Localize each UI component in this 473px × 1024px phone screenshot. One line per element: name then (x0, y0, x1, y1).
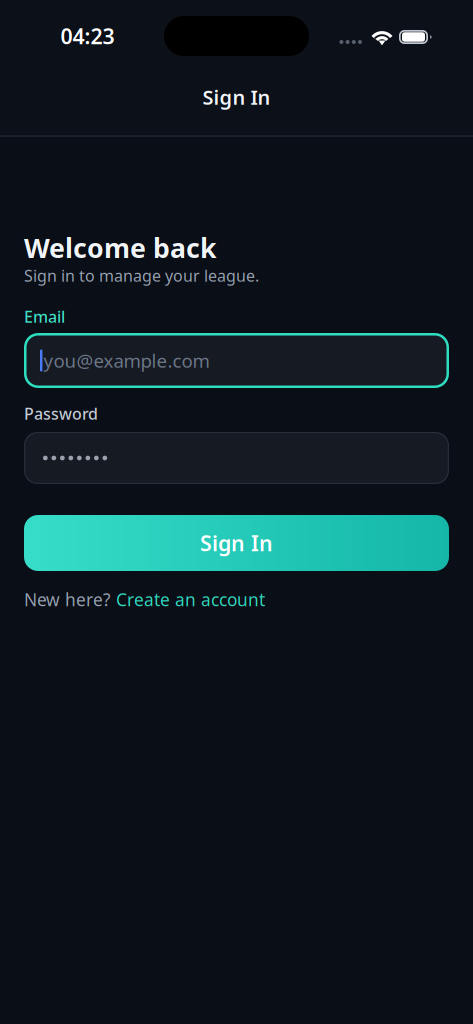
staticText: New here? (24, 588, 116, 611)
button[interactable]: you@example.com (24, 333, 449, 388)
staticText: Sign in to manage your league. (24, 265, 259, 286)
button[interactable]: Password (24, 432, 449, 484)
staticText: Welcome back (24, 230, 217, 265)
staticText: Sign In (200, 529, 273, 557)
button[interactable]: Sign In (24, 515, 449, 571)
staticText: Sign In (202, 84, 270, 110)
staticText: Create an account (116, 588, 265, 611)
staticText: Email (24, 306, 65, 327)
staticText: Password (24, 403, 98, 424)
staticText: 04:23 (60, 22, 114, 50)
button[interactable]: Create an account (116, 588, 265, 611)
staticText: you@example.com (43, 348, 209, 373)
